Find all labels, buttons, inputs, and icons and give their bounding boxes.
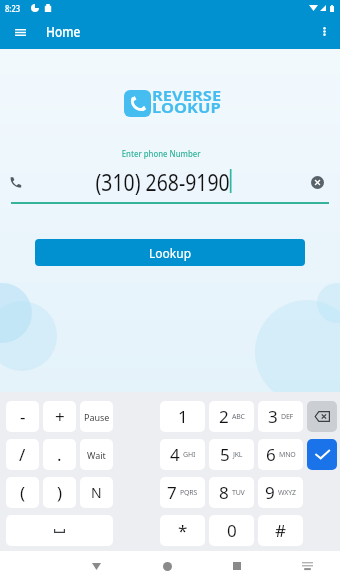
staticText: 4: [170, 443, 180, 466]
staticText: 0: [227, 519, 237, 542]
staticText: REVERSE LOOKUP: [152, 85, 221, 118]
button[interactable]: Space: [6, 515, 113, 546]
button[interactable]: 0: [209, 515, 254, 546]
button[interactable]: 8: [209, 477, 254, 508]
button[interactable]: More options: [308, 18, 340, 49]
button[interactable]: Home: [156, 555, 178, 577]
staticText: +: [55, 405, 65, 428]
staticText: TUV: [232, 488, 245, 498]
staticText: (: [20, 481, 26, 504]
button[interactable]: Hide keyboard: [85, 555, 107, 577]
button[interactable]: ): [43, 477, 76, 508]
button[interactable]: Clear: [306, 171, 328, 193]
button[interactable]: Done: [307, 439, 337, 470]
button[interactable]: 5: [209, 439, 254, 470]
button[interactable]: Switch keyboard: [296, 555, 318, 577]
button[interactable]: Lookup: [35, 239, 305, 266]
staticText: 2: [219, 405, 229, 428]
staticText: Pause: [84, 411, 110, 423]
staticText: .: [57, 443, 62, 466]
staticText: JKL: [233, 450, 243, 460]
staticText: ABC: [232, 412, 245, 422]
staticText: MNO: [279, 450, 296, 460]
staticText: #: [275, 519, 286, 542]
other: Space: [54, 529, 65, 533]
staticText: 5: [220, 443, 230, 466]
other: Done: [315, 449, 330, 460]
button[interactable]: .: [43, 439, 76, 470]
staticText: 9: [265, 481, 275, 504]
staticText: 1: [178, 405, 188, 428]
button[interactable]: Delete: [307, 401, 337, 432]
staticText: Enter phone Number: [122, 147, 201, 160]
button[interactable]: Wait: [80, 439, 113, 470]
staticText: /: [19, 443, 26, 466]
staticText: Lookup: [149, 245, 192, 261]
staticText: ): [57, 481, 63, 504]
button[interactable]: 4: [160, 439, 205, 470]
staticText: -: [20, 405, 26, 428]
button[interactable]: Menu: [0, 18, 41, 49]
button[interactable]: (: [6, 477, 39, 508]
staticText: DEF: [281, 412, 294, 422]
button[interactable]: /: [6, 439, 39, 470]
button[interactable]: #: [258, 515, 303, 546]
button[interactable]: 9: [258, 477, 303, 508]
staticText: (310) 268-9190: [95, 166, 230, 196]
staticText: Wait: [87, 449, 106, 461]
button[interactable]: *: [160, 515, 205, 546]
staticText: PQRS: [180, 488, 198, 498]
button[interactable]: N: [80, 477, 113, 508]
staticText: 7: [167, 481, 177, 504]
button[interactable]: 7: [160, 477, 205, 508]
button[interactable]: Recent apps: [226, 555, 248, 577]
button[interactable]: +: [43, 401, 76, 432]
other: Delete: [314, 411, 330, 422]
button[interactable]: 2: [209, 401, 254, 432]
button[interactable]: 3: [258, 401, 303, 432]
staticText: 8: [219, 481, 229, 504]
button[interactable]: Pause: [80, 401, 113, 432]
staticText: 8:23: [5, 2, 20, 14]
staticText: GHI: [183, 450, 196, 460]
button[interactable]: 1: [160, 401, 205, 432]
staticText: N: [91, 483, 102, 502]
staticText: WXYZ: [278, 488, 296, 498]
staticText: Home: [46, 23, 80, 41]
button[interactable]: 6: [258, 439, 303, 470]
button[interactable]: -: [6, 401, 39, 432]
staticText: 6: [266, 443, 276, 466]
staticText: 3: [268, 405, 278, 428]
staticText: *: [178, 519, 188, 542]
